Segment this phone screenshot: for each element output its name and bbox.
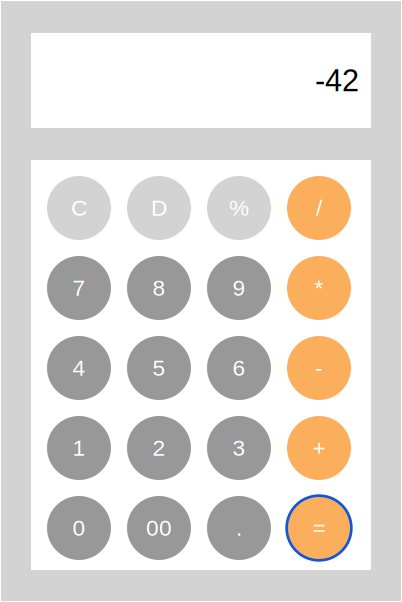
staticText: D <box>151 195 167 221</box>
button[interactable]: 9 <box>207 256 271 320</box>
button[interactable]: . <box>207 496 271 560</box>
staticText: - <box>315 355 323 381</box>
staticText: 00 <box>146 515 172 541</box>
staticText: -42 <box>315 63 359 98</box>
staticText: + <box>312 435 325 461</box>
staticText: 1 <box>72 435 85 461</box>
staticText: = <box>312 515 325 541</box>
button[interactable]: 0 <box>47 496 111 560</box>
staticText: 3 <box>232 435 245 461</box>
button[interactable]: 8 <box>127 256 191 320</box>
button[interactable]: / <box>287 176 351 240</box>
staticText: 5 <box>152 355 165 381</box>
button[interactable]: 2 <box>127 416 191 480</box>
staticText: C <box>71 195 87 221</box>
button[interactable]: 4 <box>47 336 111 400</box>
button[interactable]: 6 <box>207 336 271 400</box>
button[interactable]: 5 <box>127 336 191 400</box>
button[interactable]: D <box>127 176 191 240</box>
staticText: 9 <box>232 275 245 301</box>
staticText: % <box>229 195 249 221</box>
staticText: 2 <box>152 435 165 461</box>
button[interactable]: % <box>207 176 271 240</box>
staticText: / <box>316 195 322 221</box>
button[interactable]: - <box>287 336 351 400</box>
button[interactable]: 00 <box>127 496 191 560</box>
button[interactable]: * <box>287 256 351 320</box>
staticText: 0 <box>72 515 85 541</box>
button[interactable]: C <box>47 176 111 240</box>
button[interactable]: 1 <box>47 416 111 480</box>
staticText: * <box>314 275 323 301</box>
button[interactable]: 3 <box>207 416 271 480</box>
staticText: 7 <box>72 275 85 301</box>
button[interactable]: 7 <box>47 256 111 320</box>
staticText: 8 <box>152 275 165 301</box>
staticText: 6 <box>232 355 245 381</box>
staticText: 4 <box>72 355 85 381</box>
button[interactable]: = <box>287 496 351 560</box>
staticText: . <box>236 515 242 541</box>
button[interactable]: + <box>287 416 351 480</box>
